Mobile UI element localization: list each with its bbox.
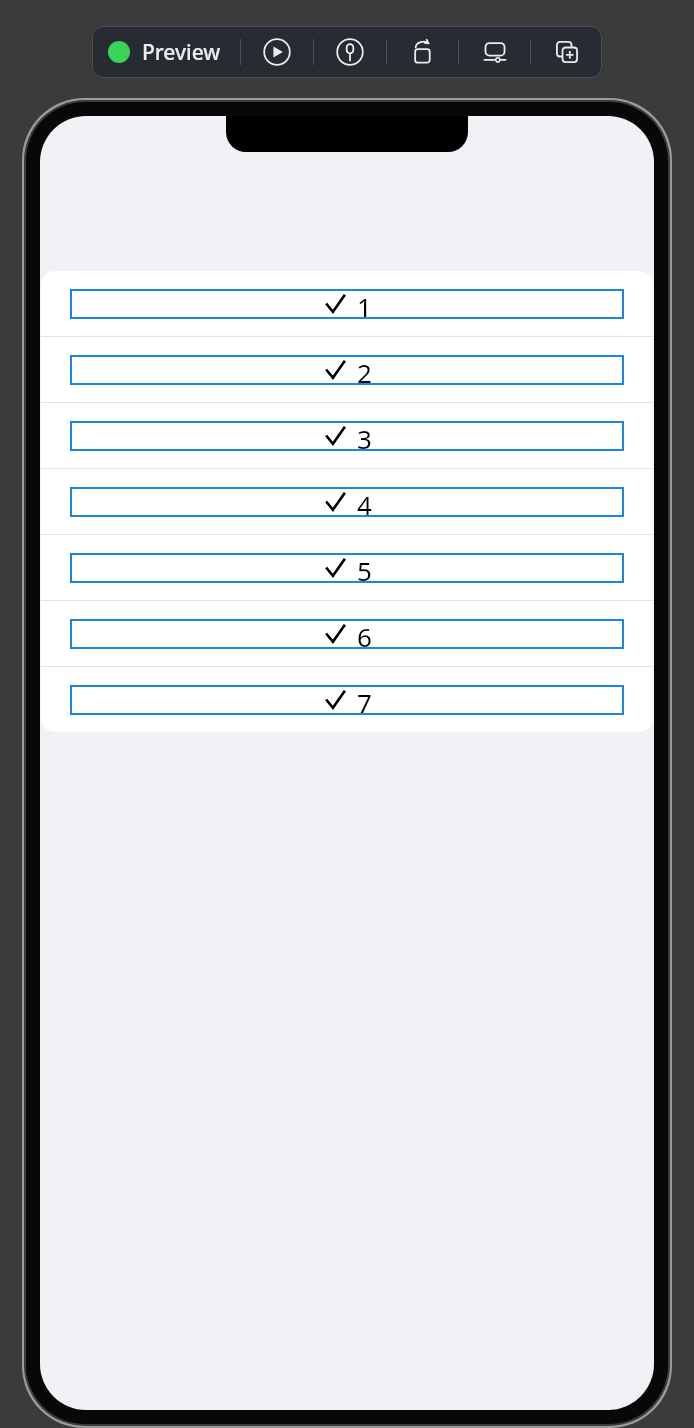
staticText: 4 xyxy=(357,487,372,517)
button[interactable]: Device settings xyxy=(459,26,530,78)
button[interactable]: 6 xyxy=(41,601,653,666)
staticText: 7 xyxy=(357,685,372,715)
button[interactable]: 4 xyxy=(41,469,653,534)
staticText: 1 xyxy=(357,289,372,319)
button[interactable]: 3 xyxy=(41,403,653,468)
button[interactable]: Add preview xyxy=(531,26,602,78)
button[interactable]: Run preview xyxy=(241,26,313,78)
staticText: Preview xyxy=(142,38,221,67)
button[interactable]: 1 xyxy=(41,271,653,336)
button[interactable]: Preview xyxy=(92,26,240,78)
staticText: 2 xyxy=(357,355,372,385)
staticText: 6 xyxy=(357,619,372,649)
staticText: 3 xyxy=(357,421,372,451)
button[interactable]: Rotate xyxy=(387,26,458,78)
button[interactable]: 7 xyxy=(41,667,653,732)
button[interactable]: Inspect xyxy=(314,26,386,78)
button[interactable]: 5 xyxy=(41,535,653,600)
staticText: 5 xyxy=(357,553,372,583)
button[interactable]: 2 xyxy=(41,337,653,402)
